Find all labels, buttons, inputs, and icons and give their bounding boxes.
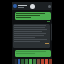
button[interactable] bbox=[15, 12, 51, 20]
button[interactable]: Profile photo bbox=[30, 4, 35, 9]
button[interactable]: Contact avatar bbox=[12, 2, 52, 10]
button[interactable] bbox=[15, 50, 51, 57]
button[interactable]: More options bbox=[48, 5, 51, 8]
button[interactable] bbox=[13, 24, 50, 48]
button[interactable]: Contact avatar bbox=[13, 4, 17, 8]
